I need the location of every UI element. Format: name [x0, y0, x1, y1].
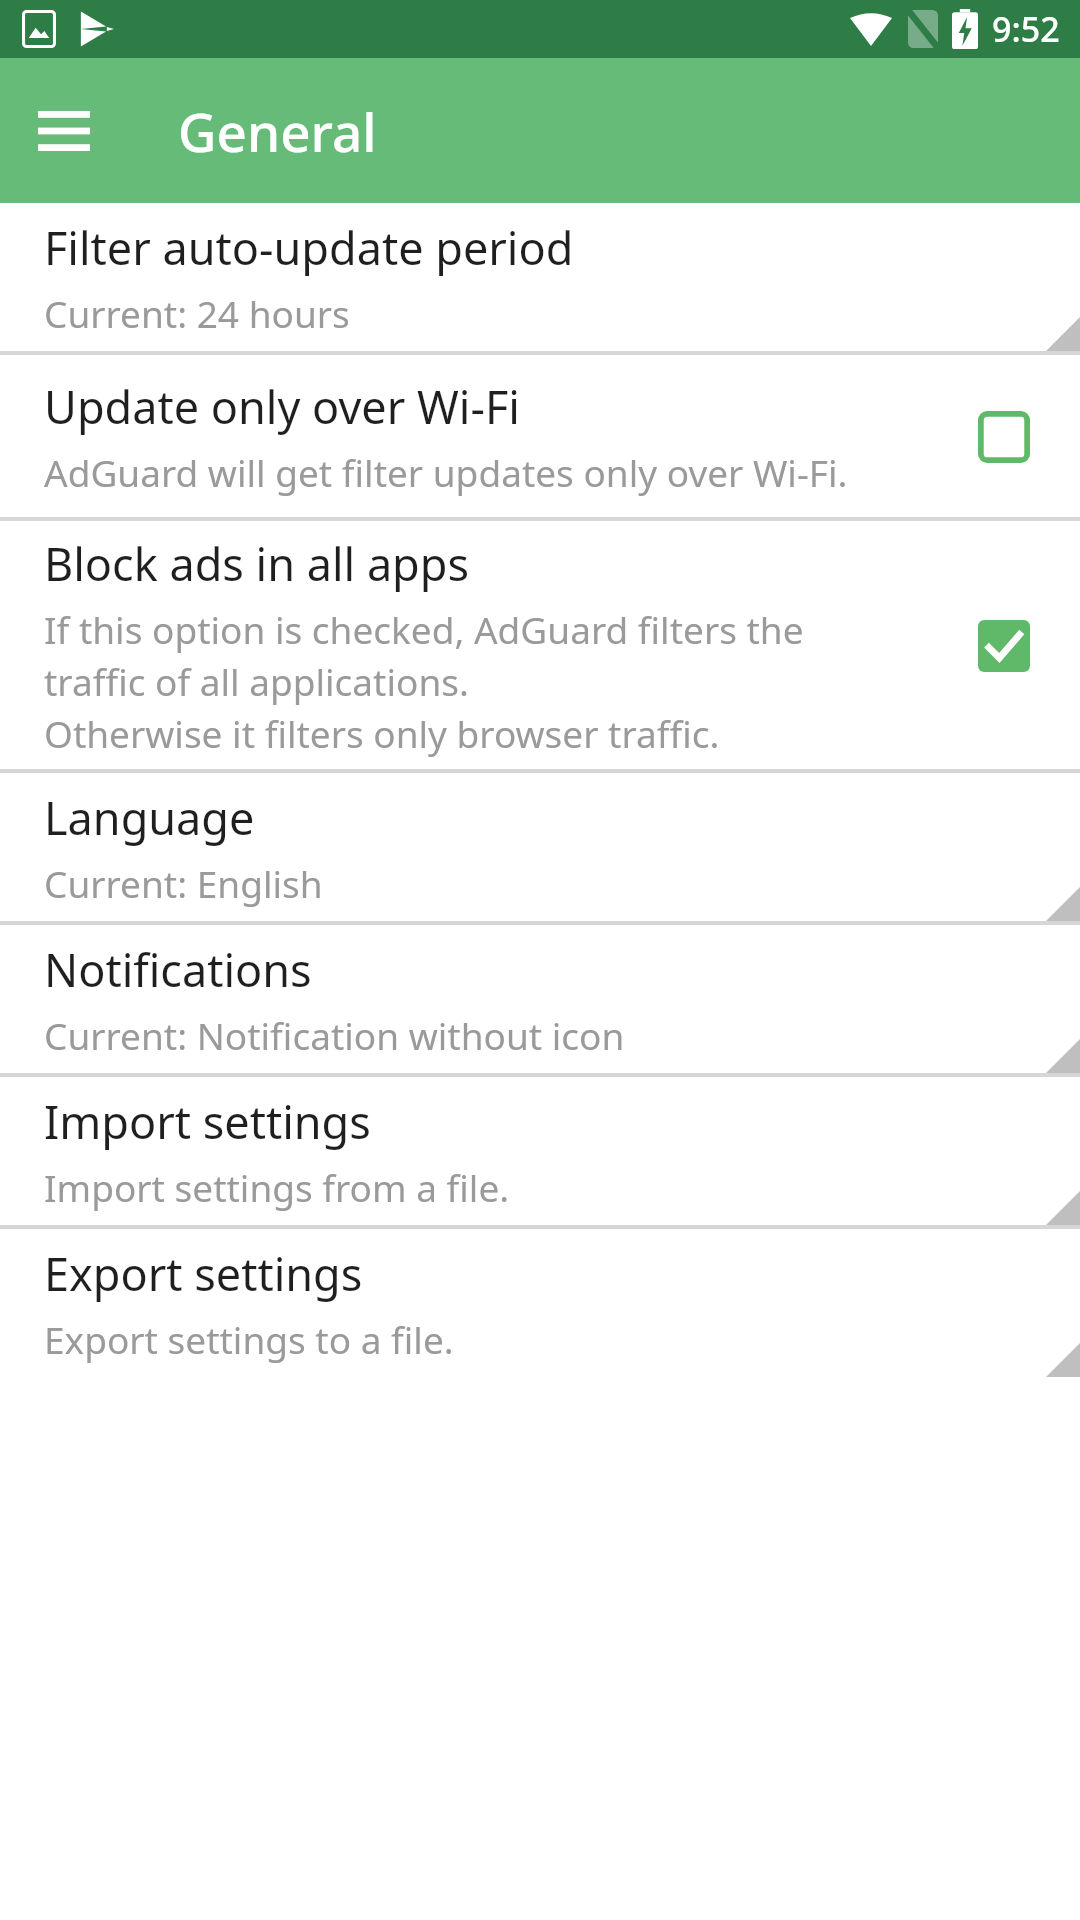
staticText: Otherwise it filters only browser traffi…: [44, 708, 720, 758]
staticText: Current: English: [44, 858, 323, 908]
staticText: Language: [44, 787, 255, 848]
button[interactable]: Language: [0, 773, 1080, 921]
staticText: If this option is checked, AdGuard filte…: [44, 604, 804, 654]
staticText: 9:52: [992, 6, 1060, 52]
button[interactable]: Export settings: [0, 1229, 1080, 1377]
staticText: Notifications: [44, 939, 312, 1000]
button[interactable]: Checked: [958, 600, 1050, 692]
button[interactable]: Filter auto-update period: [0, 203, 1080, 351]
staticText: Export settings: [44, 1243, 363, 1304]
staticText: Export settings to a file.: [44, 1314, 454, 1364]
staticText: Filter auto-update period: [44, 217, 574, 278]
staticText: Import settings: [44, 1091, 371, 1152]
staticText: Block ads in all apps: [44, 533, 470, 594]
staticText: AdGuard will get filter updates only ove…: [44, 447, 848, 497]
button[interactable]: Notifications: [0, 925, 1080, 1073]
staticText: General: [178, 95, 377, 167]
button[interactable]: Update only over Wi-Fi: [0, 355, 1080, 517]
staticText: Import settings from a file.: [44, 1162, 510, 1212]
staticText: traffic of all applications.: [44, 656, 469, 706]
staticText: Current: 24 hours: [44, 288, 350, 338]
staticText: Update only over Wi-Fi: [44, 376, 520, 437]
button[interactable]: Open navigation drawer: [14, 81, 114, 181]
button[interactable]: Block ads in all apps: [0, 521, 1080, 769]
staticText: Current: Notification without icon: [44, 1010, 625, 1060]
button[interactable]: Unchecked: [958, 391, 1050, 483]
button[interactable]: Import settings: [0, 1077, 1080, 1225]
